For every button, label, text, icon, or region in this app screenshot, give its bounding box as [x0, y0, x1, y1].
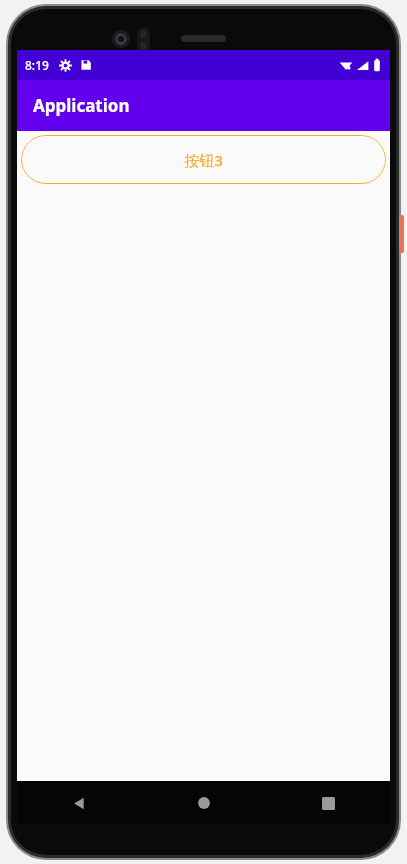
button[interactable]: Back [17, 781, 142, 825]
button[interactable]: 按钮3 [21, 135, 386, 184]
staticText: 按钮3 [184, 150, 223, 170]
staticText: 8:19 [25, 57, 49, 73]
button[interactable]: Recent apps [266, 781, 390, 825]
staticText: Application [33, 94, 130, 117]
button[interactable]: Home [142, 781, 266, 825]
